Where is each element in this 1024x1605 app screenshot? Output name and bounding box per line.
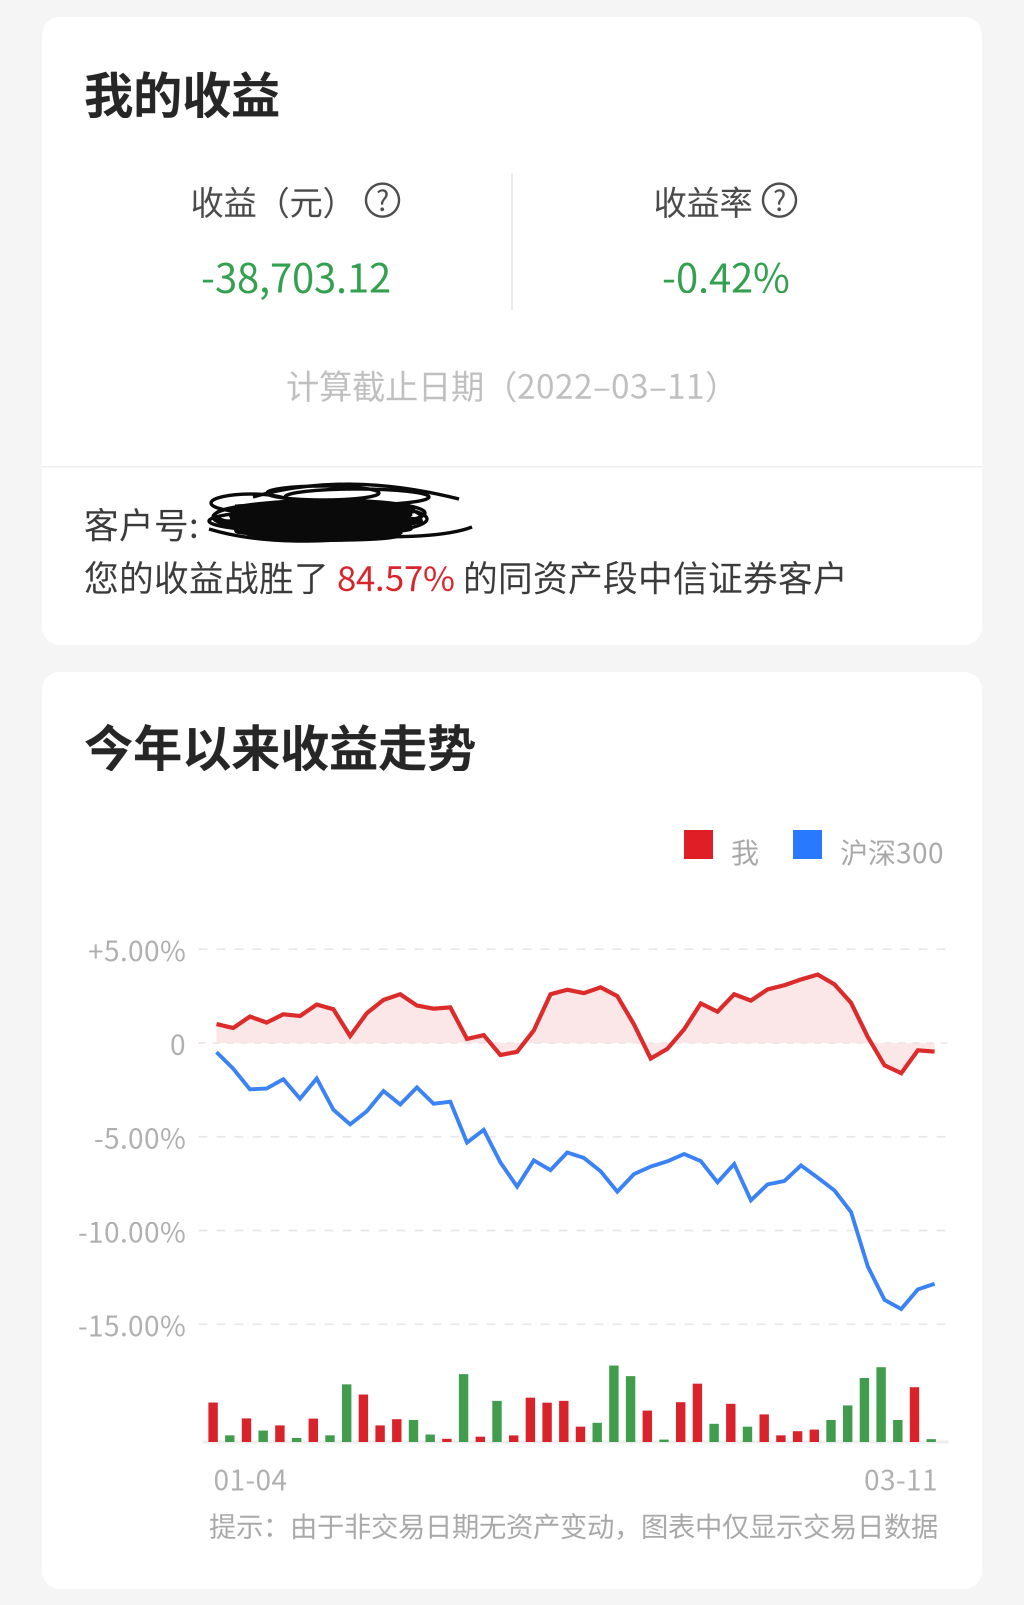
staticText: ? [773,179,786,219]
staticText: 84.57% [337,551,455,601]
staticText: 01-04 [213,1458,287,1498]
staticText: 我 [731,831,759,871]
staticText: ? [376,179,389,219]
staticText: -38,703.12 [201,246,391,304]
staticText: 收益（元） [190,176,355,224]
staticText: 沪深300 [840,831,944,871]
staticText: +5.00% [88,929,186,969]
staticText: 收益率 [653,176,752,224]
staticText: -15.00% [78,1304,186,1344]
staticText: 提示：由于非交易日期无资产变动，图表中仅显示交易日数据 [209,1505,938,1545]
staticText: -10.00% [78,1210,186,1251]
staticText: 0 [170,1023,186,1063]
staticText: 的同资产段中信证券客户 [455,551,848,601]
staticText: -5.00% [94,1116,186,1157]
staticText: 计算截止日期（2022–03–11） [286,360,738,408]
staticText: 您的收益战胜了 [84,551,337,601]
staticText: 03-11 [864,1458,938,1498]
button[interactable]: 收益说明 [760,181,798,219]
staticText: 今年以来收益走势 [84,709,476,780]
button[interactable]: 收益说明 [363,181,401,219]
staticText: 客户号: [84,498,199,548]
staticText: 我的收益 [84,56,280,127]
staticText: -0.42% [662,246,790,304]
